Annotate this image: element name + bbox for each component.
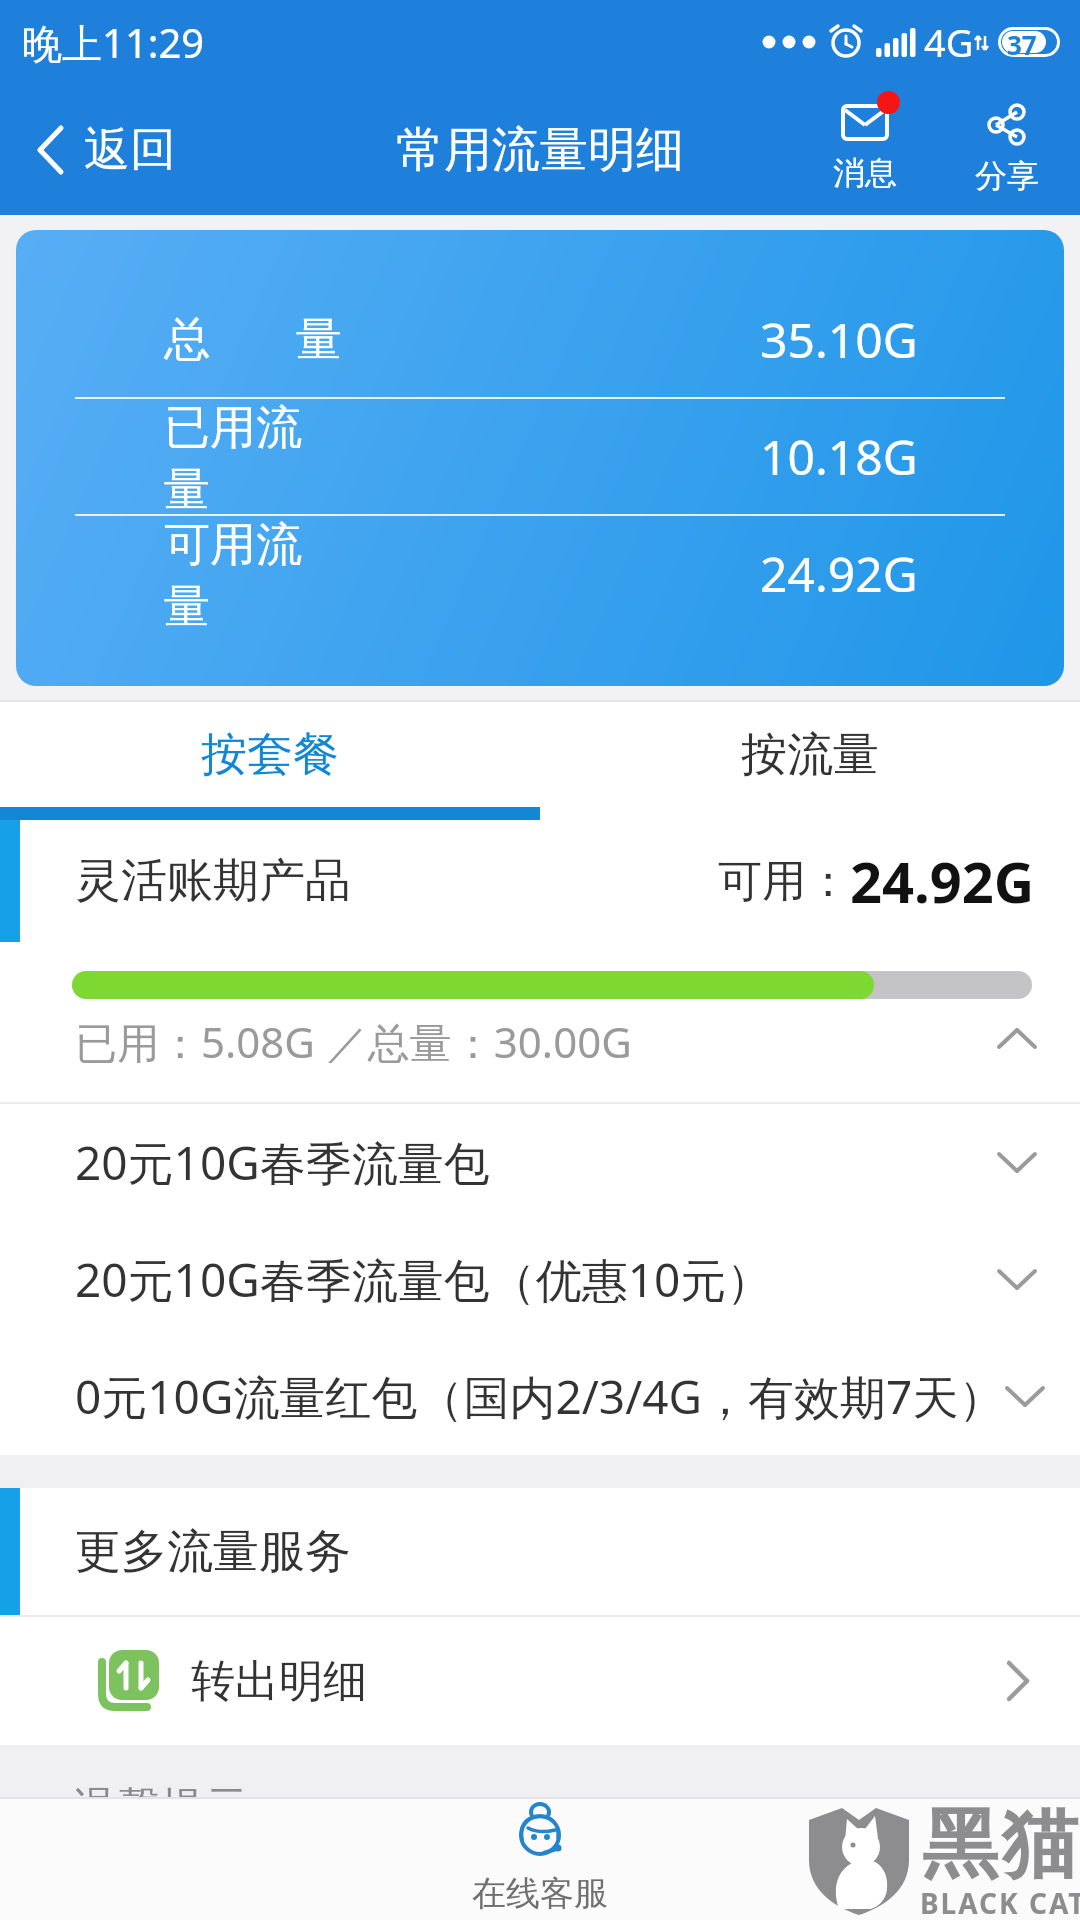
staticText: 4G (924, 16, 974, 68)
staticText: 总 (164, 311, 210, 369)
staticText: 已用流量 (164, 399, 342, 514)
staticText: 37 (1007, 27, 1037, 57)
staticText: 0元10G流量红包（国内2/3/4G，有效期7天） (75, 1365, 1005, 1428)
staticText: 温馨提示 (72, 1781, 248, 1797)
staticText: 按套餐 (201, 726, 339, 784)
staticText: 10.18G (760, 424, 918, 489)
staticText: 分享 (975, 156, 1039, 196)
button[interactable]: 灵活账期产品 (0, 820, 1080, 942)
button[interactable]: 分享 (964, 104, 1050, 196)
button[interactable]: 返回 (36, 121, 176, 179)
staticText: 量 (296, 311, 342, 369)
staticText: 已用：5.08G ／总量：30.00G (75, 1013, 632, 1063)
staticText: 在线客服 (472, 1872, 608, 1915)
staticText: 24.92G (850, 843, 1035, 919)
staticText: 24.92G (760, 541, 918, 606)
button[interactable]: 20元10G春季流量包（优惠10元） (0, 1221, 1080, 1338)
staticText: 35.10G (760, 307, 918, 372)
staticText: 转出明细 (191, 1654, 367, 1709)
staticText: 消息 (833, 153, 897, 193)
staticText: 20元10G春季流量包（优惠10元） (75, 1248, 773, 1311)
button[interactable]: 在线客服 (472, 1804, 608, 1915)
staticText: 更多流量服务 (75, 1523, 351, 1581)
staticText: BLACK CAT (920, 1884, 1080, 1920)
staticText: 按流量 (741, 726, 879, 784)
staticText: 灵活账期产品 (75, 852, 351, 910)
staticText: 晚上11:29 (22, 15, 205, 70)
staticText: 20元10G春季流量包 (75, 1131, 490, 1194)
button[interactable]: 20元10G春季流量包 (0, 1104, 1080, 1221)
button[interactable]: 按流量 (540, 702, 1080, 807)
button[interactable]: 0元10G流量红包（国内2/3/4G，有效期7天） (0, 1338, 1080, 1455)
button[interactable]: 消息 (815, 104, 915, 193)
staticText: 常用流量明细 (396, 120, 684, 180)
staticText: 返回 (84, 121, 176, 179)
staticText: 可用流量 (164, 516, 342, 631)
staticText: 黑猫 (920, 1797, 1080, 1893)
button[interactable]: 按套餐 (0, 702, 540, 807)
staticText: 可用： (718, 854, 850, 909)
button[interactable]: 转出明细 (0, 1617, 1080, 1745)
